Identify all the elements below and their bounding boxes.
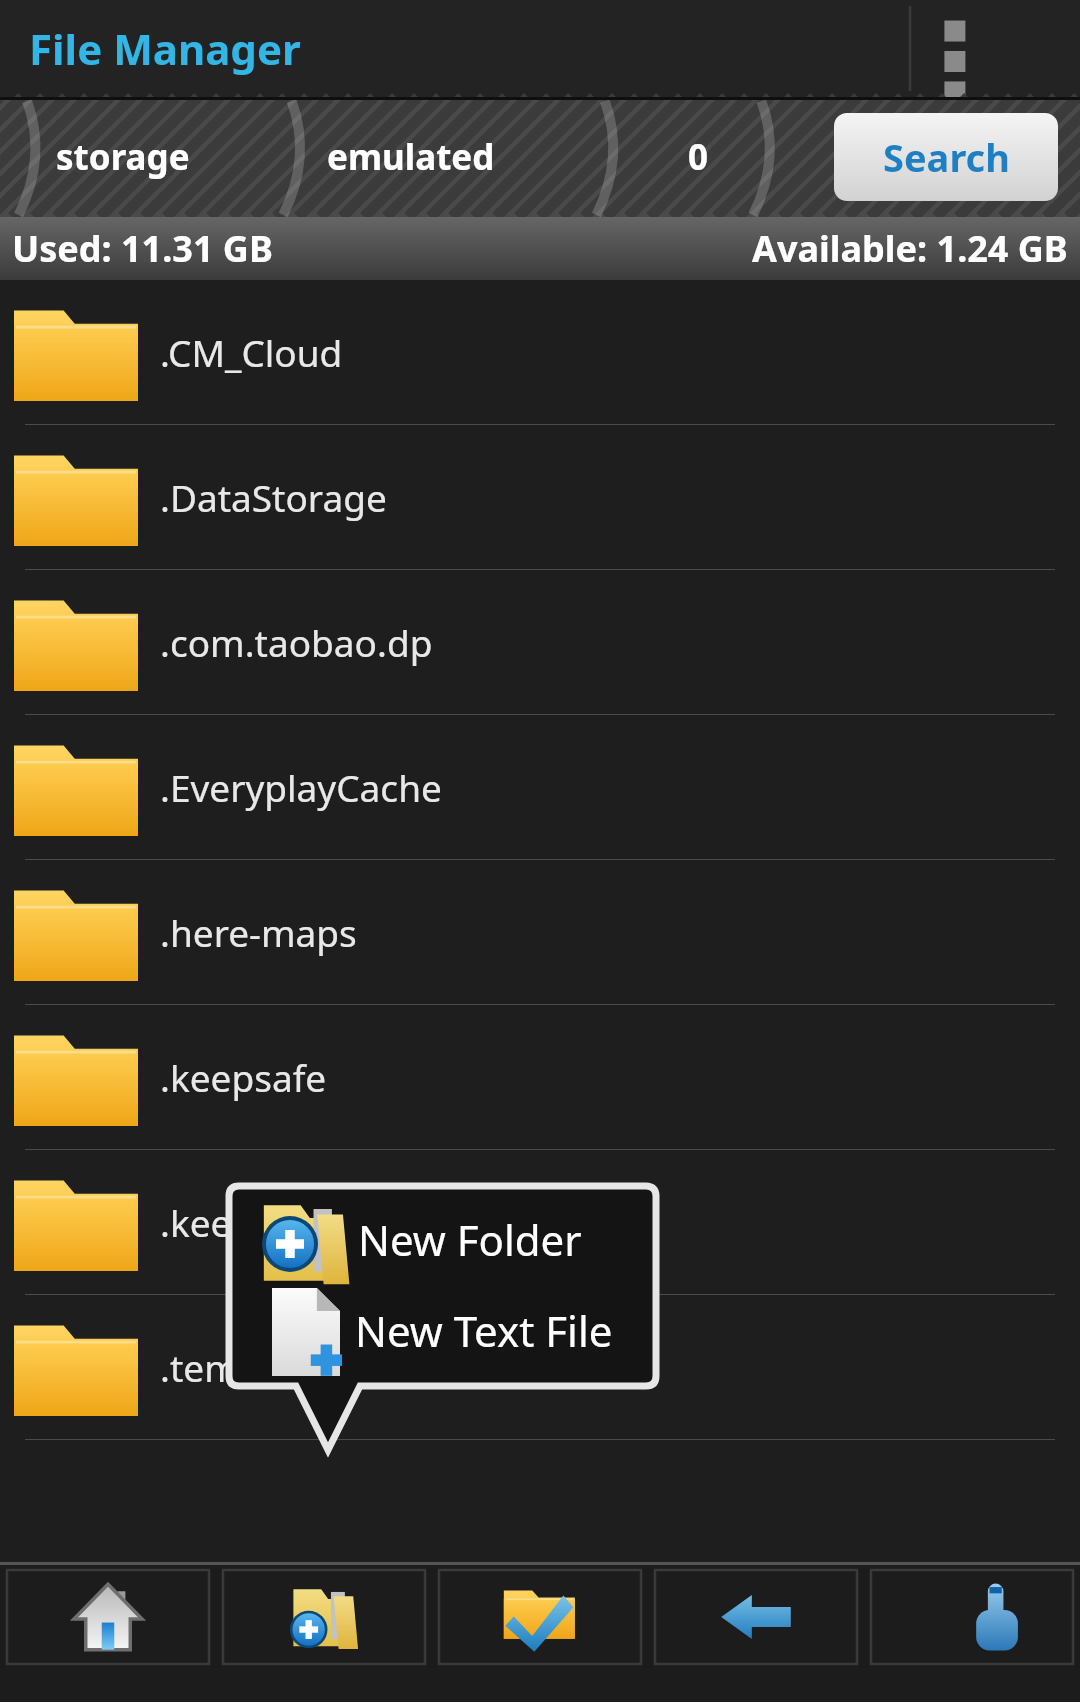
staticText: .DataStorage [160, 472, 387, 522]
button[interactable]: .keepsafe [0, 1005, 1080, 1150]
staticText: .kee [160, 1197, 232, 1247]
staticText: emulated [327, 133, 495, 181]
button[interactable]: .tem [0, 1295, 1080, 1440]
staticText: .EveryplayCache [160, 762, 442, 812]
button[interactable]: .com.taobao.dp [0, 570, 1080, 715]
staticText: .tem [160, 1342, 239, 1392]
staticText: File Manager [29, 20, 301, 77]
staticText: .here-maps [160, 907, 357, 957]
button[interactable]: .EveryplayCache [0, 715, 1080, 860]
staticText: storage [56, 133, 190, 181]
staticText: New Text File [355, 1302, 613, 1359]
button[interactable]: Search [834, 113, 1058, 201]
staticText: .CM_Cloud [160, 327, 343, 377]
button[interactable]: storage [0, 97, 246, 217]
staticText: 0 [688, 133, 709, 181]
button[interactable]: New Text File [245, 1284, 647, 1376]
button[interactable]: Back [655, 1570, 857, 1664]
staticText: Search [883, 131, 1010, 183]
staticText: Used: 11.31 GB [12, 224, 273, 273]
button[interactable]: Select all [439, 1570, 641, 1664]
staticText: New Folder [358, 1211, 582, 1268]
button[interactable]: .DataStorage [0, 425, 1080, 570]
button[interactable]: More options [900, 0, 1080, 97]
button[interactable]: Multi select [871, 1570, 1073, 1664]
button[interactable]: .here-maps [0, 860, 1080, 1005]
button[interactable]: 0 [575, 97, 822, 217]
button[interactable]: .CM_Cloud [0, 280, 1080, 425]
button[interactable]: New folder [223, 1570, 425, 1664]
staticText: .keepsafe [160, 1052, 327, 1102]
button[interactable]: emulated [246, 97, 575, 217]
button[interactable]: .kee [0, 1150, 1080, 1295]
button[interactable]: Home [7, 1570, 209, 1664]
staticText: .com.taobao.dp [160, 617, 433, 667]
button[interactable]: New Folder [245, 1194, 647, 1284]
staticText: Available: 1.24 GB [752, 224, 1068, 273]
